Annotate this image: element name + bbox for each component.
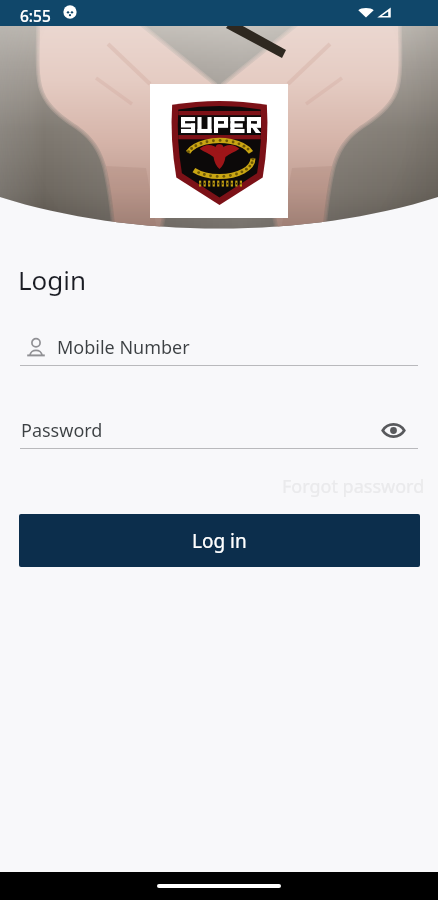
staticText: Login [18,262,87,297]
button[interactable]: Log in [19,514,420,567]
staticText: 6:55 [20,5,51,26]
button[interactable]: Show password [382,422,405,439]
button[interactable]: Forgot password [265,472,425,500]
button[interactable]: Password [0,413,438,449]
staticText: Forgot password [282,474,425,499]
other: Do not disturb [63,5,77,19]
staticText: Mobile Number [57,335,190,360]
staticText: Password [21,418,103,443]
button[interactable]: Mobile Number [0,330,438,366]
staticText: Log in [192,528,247,554]
